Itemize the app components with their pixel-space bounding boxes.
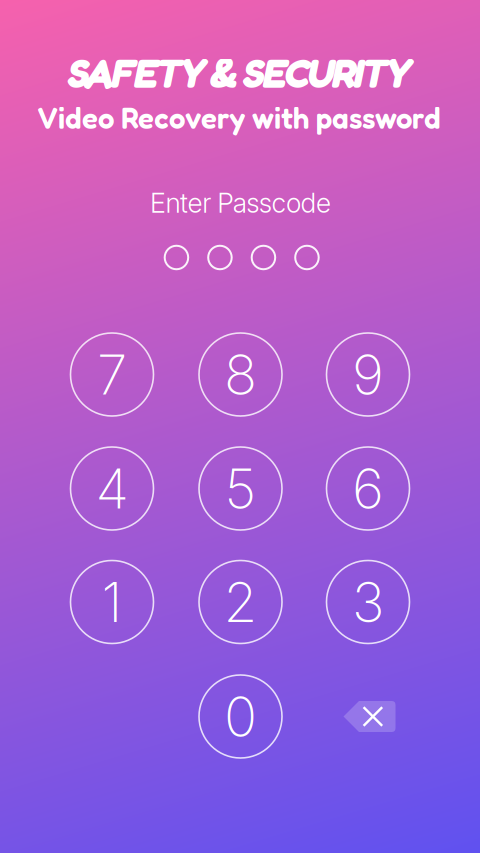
button[interactable]: 2	[199, 560, 282, 643]
button[interactable]: 7	[70, 333, 153, 416]
button[interactable]: 4	[70, 447, 153, 530]
button[interactable]: 6	[326, 447, 409, 530]
button[interactable]: 0	[199, 675, 282, 758]
button[interactable]: 3	[326, 560, 409, 643]
button[interactable]: 1	[70, 560, 153, 643]
staticText: 6	[352, 455, 384, 521]
staticText: 3	[352, 569, 384, 635]
staticText: SAFETY & SECURITY	[66, 49, 409, 97]
staticText: 8	[224, 341, 257, 407]
staticText: 1	[101, 569, 122, 635]
staticText: 2	[223, 569, 257, 635]
button[interactable]: 5	[199, 447, 282, 530]
staticText: 5	[224, 455, 256, 521]
staticText: 4	[95, 455, 128, 521]
button[interactable]: Delete	[328, 675, 411, 758]
button[interactable]: 9	[326, 333, 409, 416]
staticText: 7	[97, 341, 127, 407]
staticText: Enter Passcode	[150, 187, 331, 219]
staticText: Video Recovery with password	[37, 100, 441, 136]
staticText: 9	[352, 341, 384, 407]
button[interactable]: 8	[199, 333, 282, 416]
staticText: 0	[224, 683, 257, 749]
